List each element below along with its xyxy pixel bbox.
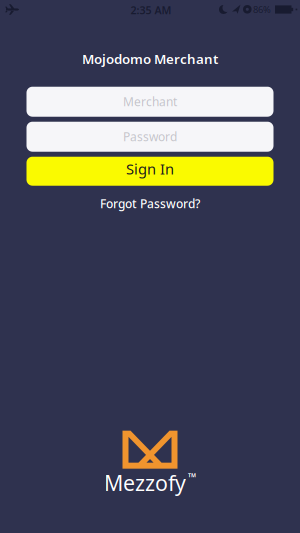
- button[interactable]: Sign In: [26, 157, 273, 186]
- staticText: Mezzofy: [104, 469, 186, 497]
- button[interactable]: Forgot Password?: [100, 196, 200, 212]
- button[interactable]: Password: [26, 122, 273, 152]
- staticText: 2:35 AM: [130, 3, 171, 17]
- staticText: TM: [188, 472, 196, 479]
- button[interactable]: Merchant: [26, 87, 273, 117]
- staticText: Merchant: [123, 94, 177, 110]
- staticText: Password: [123, 129, 177, 145]
- staticText: Sign In: [126, 159, 174, 178]
- staticText: Mojodomo Merchant: [82, 50, 218, 68]
- staticText: 86%: [253, 3, 271, 16]
- staticText: Forgot Password?: [100, 196, 200, 212]
